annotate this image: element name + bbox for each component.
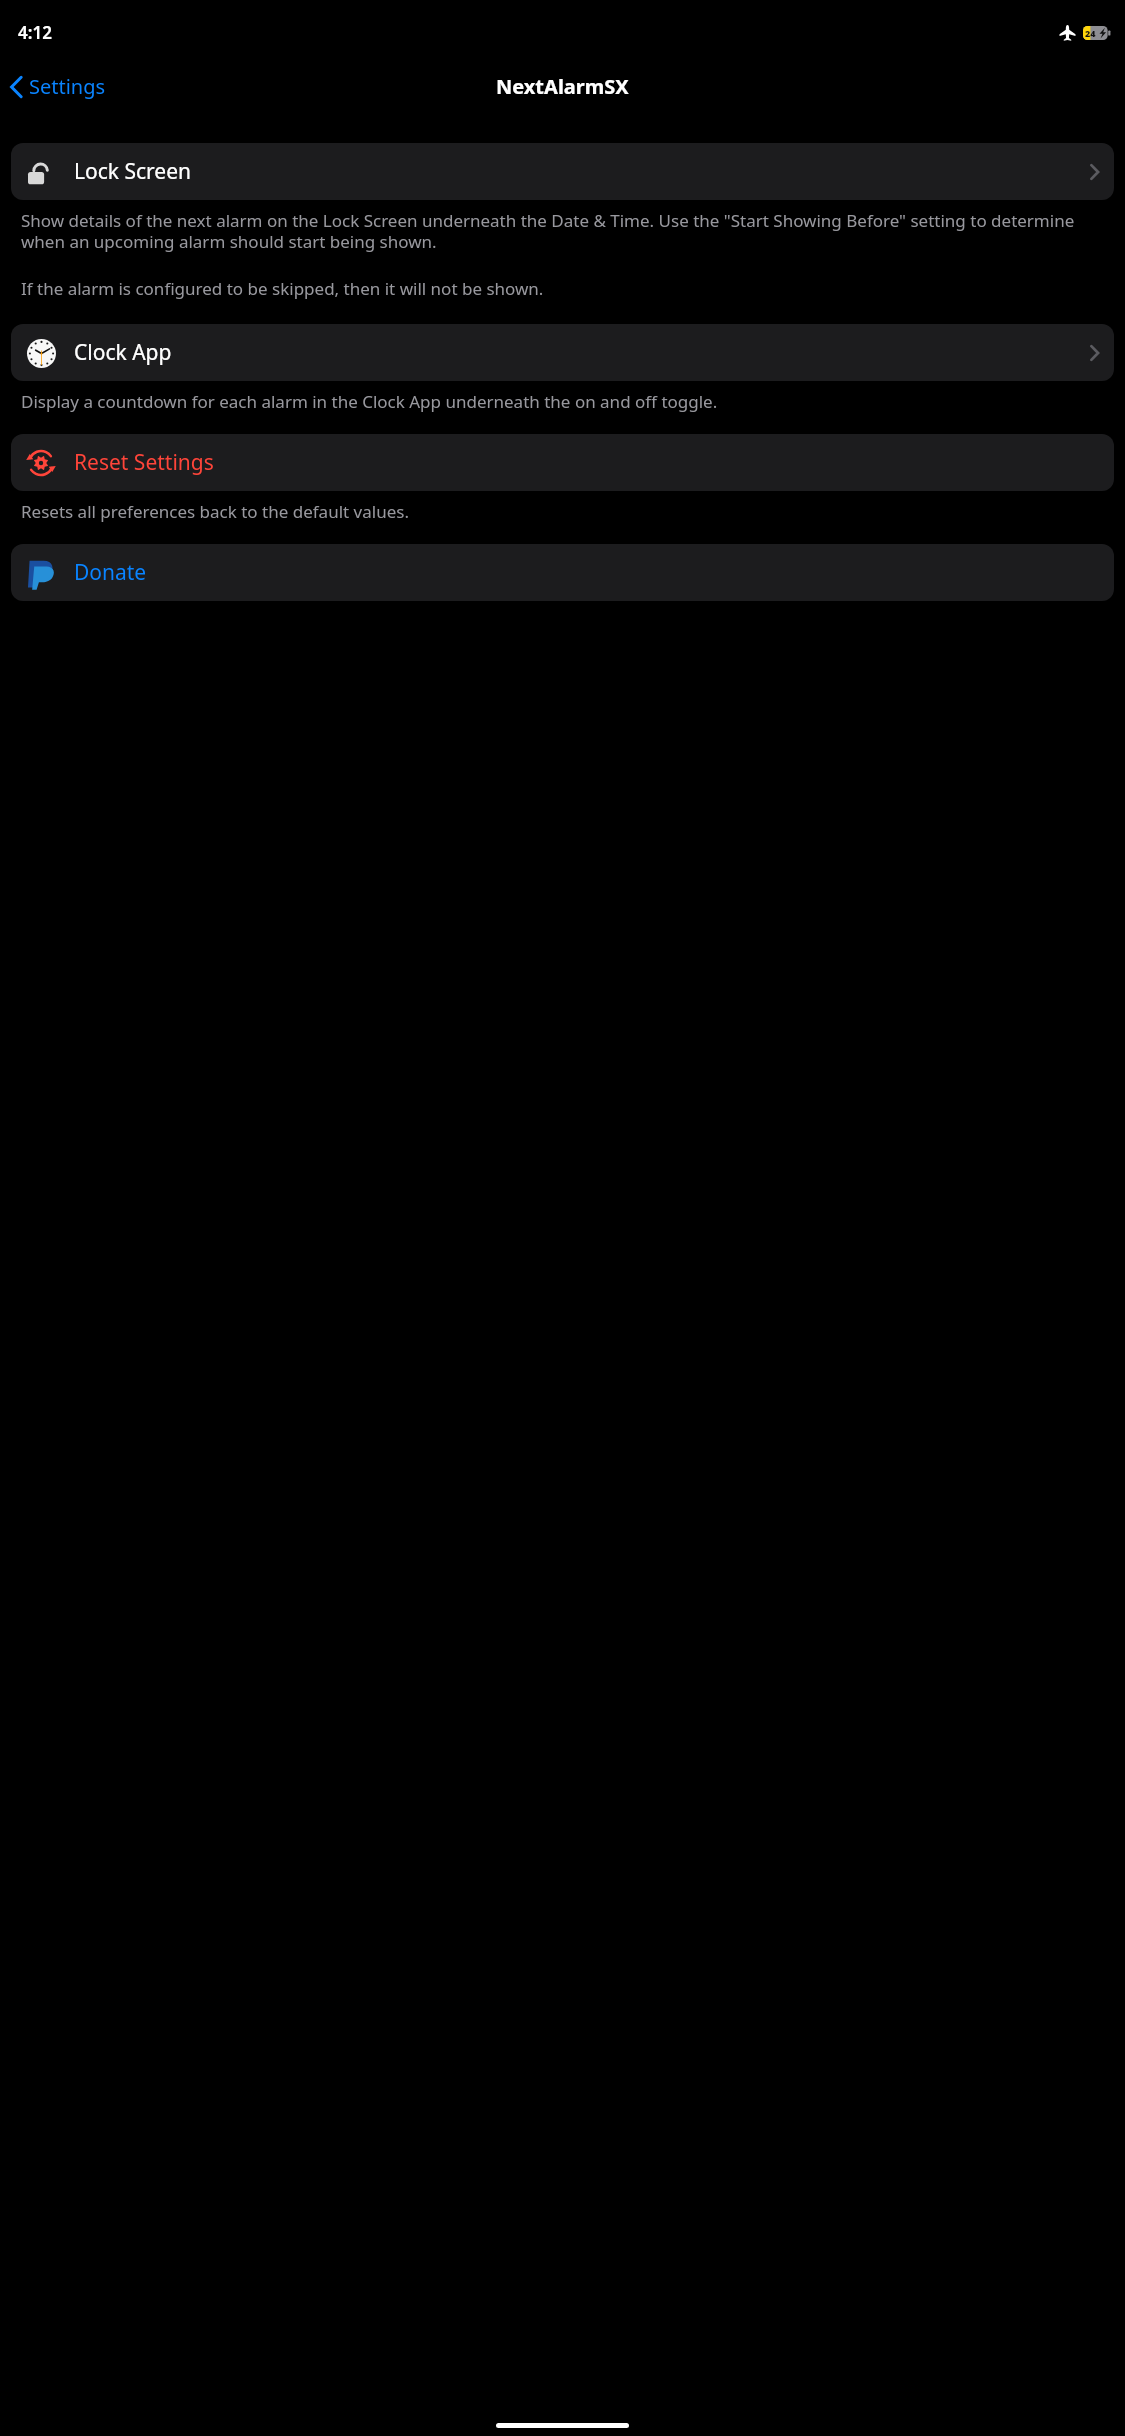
staticText: Donate bbox=[74, 558, 147, 587]
button[interactable]: Settings bbox=[0, 67, 116, 106]
staticText: Lock Screen bbox=[74, 157, 191, 186]
staticText: 24 bbox=[1085, 27, 1096, 39]
staticText: 4:12 bbox=[18, 21, 52, 44]
staticText: Display a countdown for each alarm in th… bbox=[21, 390, 1108, 413]
staticText: NextAlarmSX bbox=[496, 73, 629, 100]
staticText: Show details of the next alarm on the Lo… bbox=[21, 209, 1108, 253]
button[interactable]: Reset Settings bbox=[11, 434, 1114, 491]
staticText: Clock App bbox=[74, 338, 172, 367]
button[interactable]: Clock App bbox=[11, 324, 1114, 381]
button[interactable]: Lock Screen bbox=[11, 143, 1114, 200]
staticText: Reset Settings bbox=[74, 448, 214, 477]
button[interactable]: Donate bbox=[11, 544, 1114, 601]
staticText: Resets all preferences back to the defau… bbox=[21, 500, 1108, 523]
staticText: Settings bbox=[29, 73, 106, 100]
staticText: If the alarm is configured to be skipped… bbox=[21, 277, 1108, 300]
